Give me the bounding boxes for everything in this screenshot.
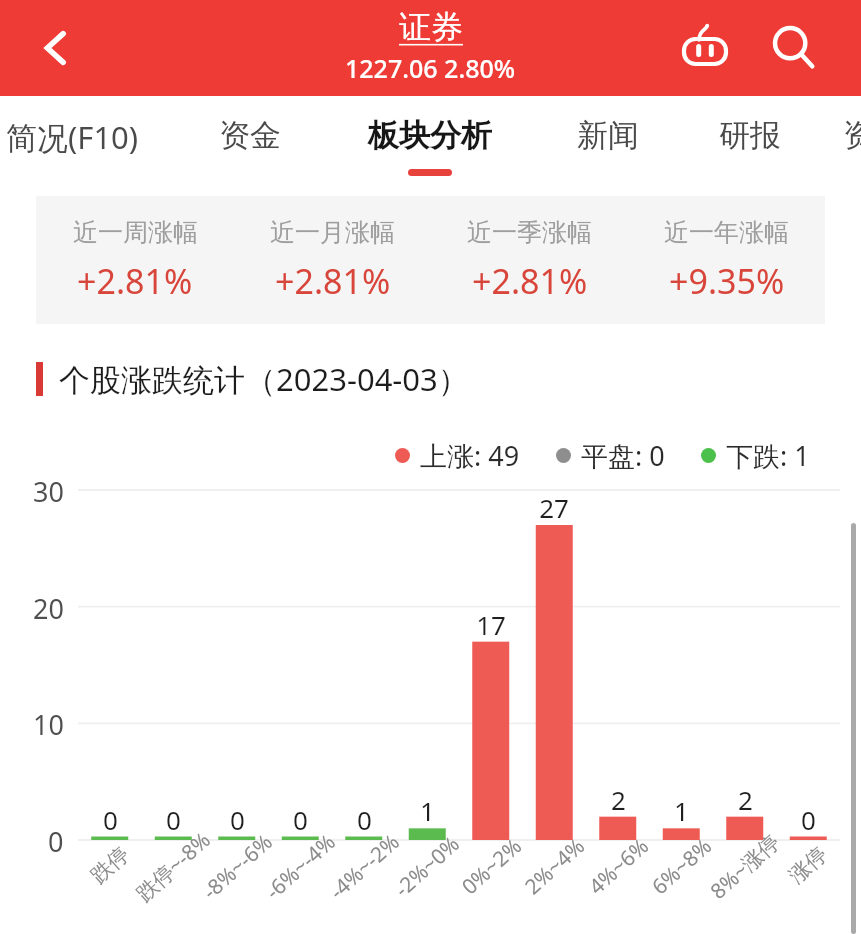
button[interactable]: 资 — [763, 96, 861, 184]
staticText: 简况(F10) — [6, 116, 139, 158]
button[interactable]: Back — [24, 16, 88, 80]
staticText: 1 — [674, 793, 689, 828]
staticText: 板块分析 — [368, 116, 492, 155]
staticText: 证券 — [399, 7, 463, 47]
button[interactable]: 新闻 — [513, 96, 703, 184]
staticText: 1227.06 2.80% — [345, 51, 516, 85]
staticText: 近一年涨幅 — [664, 217, 789, 248]
staticText: 近一周涨幅 — [73, 217, 198, 248]
staticText: 27 — [539, 490, 569, 525]
staticText: +2.81% — [275, 258, 391, 304]
staticText: +2.81% — [472, 258, 588, 304]
staticText: -6%~-4% — [259, 827, 342, 906]
staticText: -4%~-2% — [323, 827, 406, 906]
button[interactable]: 近一周涨幅 — [36, 217, 234, 304]
staticText: 下跌: 1 — [726, 437, 810, 474]
staticText: 0 — [357, 802, 372, 837]
button[interactable]: Search — [762, 16, 826, 80]
staticText: 研报 — [719, 116, 781, 155]
staticText: 2%~4% — [518, 832, 591, 901]
staticText: 0 — [230, 802, 245, 837]
staticText: 10 — [33, 706, 64, 743]
staticText: 跌停~-8% — [130, 825, 217, 908]
staticText: 0 — [103, 802, 118, 837]
staticText: 0 — [293, 802, 308, 837]
staticText: 2 — [611, 782, 626, 817]
button[interactable]: 板块分析 — [335, 96, 525, 184]
staticText: 30 — [33, 473, 64, 510]
staticText: -8%~-6% — [196, 827, 279, 906]
staticText: 4%~6% — [582, 832, 655, 901]
staticText: 1 — [420, 793, 435, 828]
staticText: 0%~2% — [455, 832, 528, 901]
staticText: +2.81% — [77, 258, 193, 304]
staticText: 资 — [843, 116, 861, 155]
button[interactable]: 研报 — [655, 96, 845, 184]
button[interactable]: 简况(F10) — [0, 96, 167, 184]
staticText: 20 — [33, 590, 64, 627]
staticText: 平盘: 0 — [581, 437, 665, 474]
staticText: 个股涨跌统计（2023-04-03） — [59, 358, 469, 400]
button[interactable]: 近一月涨幅 — [234, 217, 431, 304]
staticText: 近一季涨幅 — [467, 217, 592, 248]
button[interactable]: 近一季涨幅 — [431, 217, 628, 304]
button[interactable]: 资金 — [155, 96, 345, 184]
button[interactable]: AI assistant — [673, 16, 737, 80]
staticText: 跌停 — [86, 841, 134, 889]
staticText: +9.35% — [669, 258, 785, 304]
staticText: 0 — [801, 802, 816, 837]
staticText: 上涨: 49 — [420, 437, 520, 474]
staticText: 2 — [738, 782, 753, 817]
staticText: 新闻 — [577, 116, 639, 155]
staticText: 涨停 — [784, 841, 832, 889]
button[interactable]: 近一年涨幅 — [628, 217, 825, 304]
staticText: 资金 — [219, 116, 281, 155]
staticText: 0 — [166, 802, 181, 837]
staticText: 近一月涨幅 — [270, 217, 395, 248]
staticText: 6%~8% — [645, 832, 718, 901]
staticText: -2%~0% — [388, 830, 466, 903]
staticText: 8%~涨停 — [704, 828, 786, 905]
staticText: 17 — [476, 607, 506, 642]
staticText: 0 — [48, 823, 64, 860]
